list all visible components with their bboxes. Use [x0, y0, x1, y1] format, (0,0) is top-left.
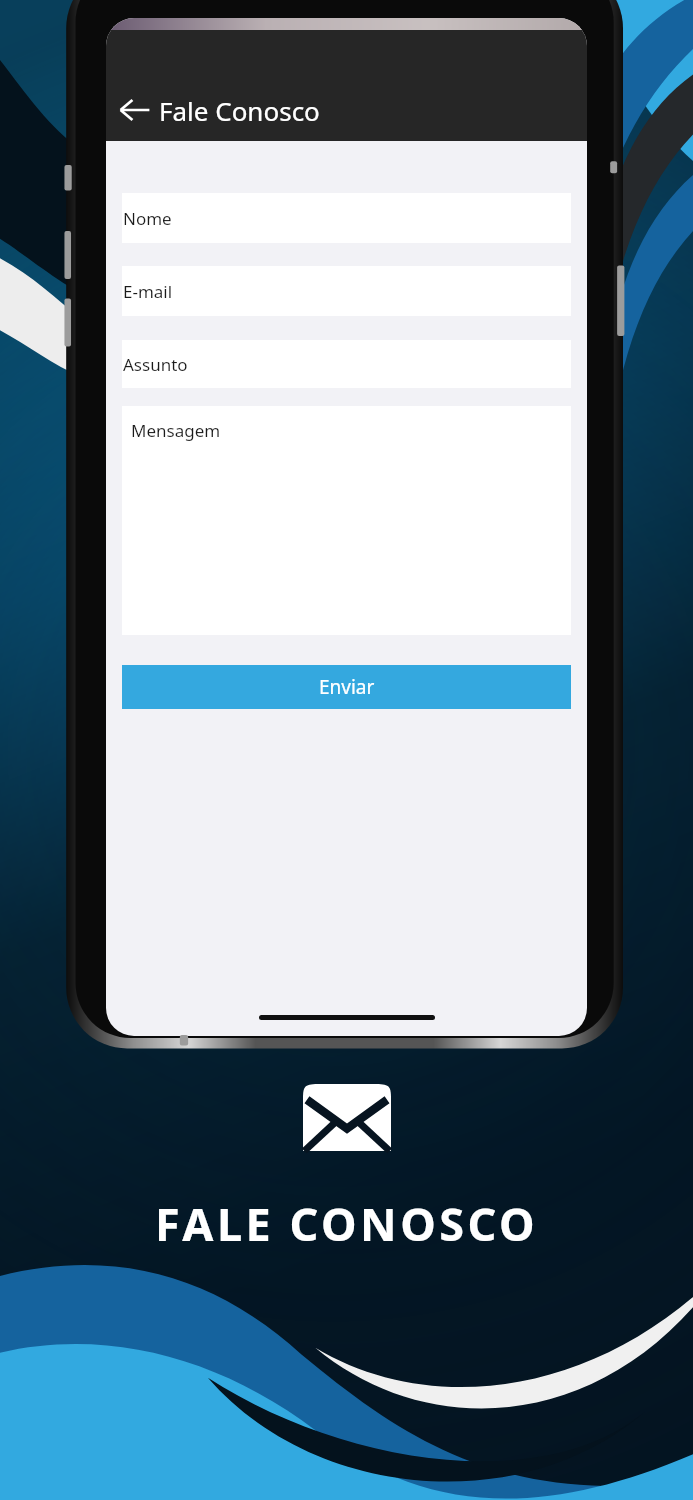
button[interactable]: Mensagem [122, 406, 571, 635]
staticText: Nome [123, 207, 172, 230]
staticText: Fale Conosco [159, 93, 320, 128]
staticText: E-mail [123, 280, 173, 303]
staticText: Mensagem [131, 419, 221, 442]
staticText: FALE CONOSCO [155, 1193, 539, 1254]
button[interactable]: E-mail [122, 266, 571, 316]
button[interactable]: Assunto [122, 340, 571, 388]
button[interactable]: Nome [122, 193, 571, 243]
staticText: Assunto [123, 353, 188, 376]
staticText: Enviar [319, 674, 375, 700]
button[interactable]: Back [112, 87, 158, 133]
button[interactable]: Enviar [122, 665, 571, 709]
